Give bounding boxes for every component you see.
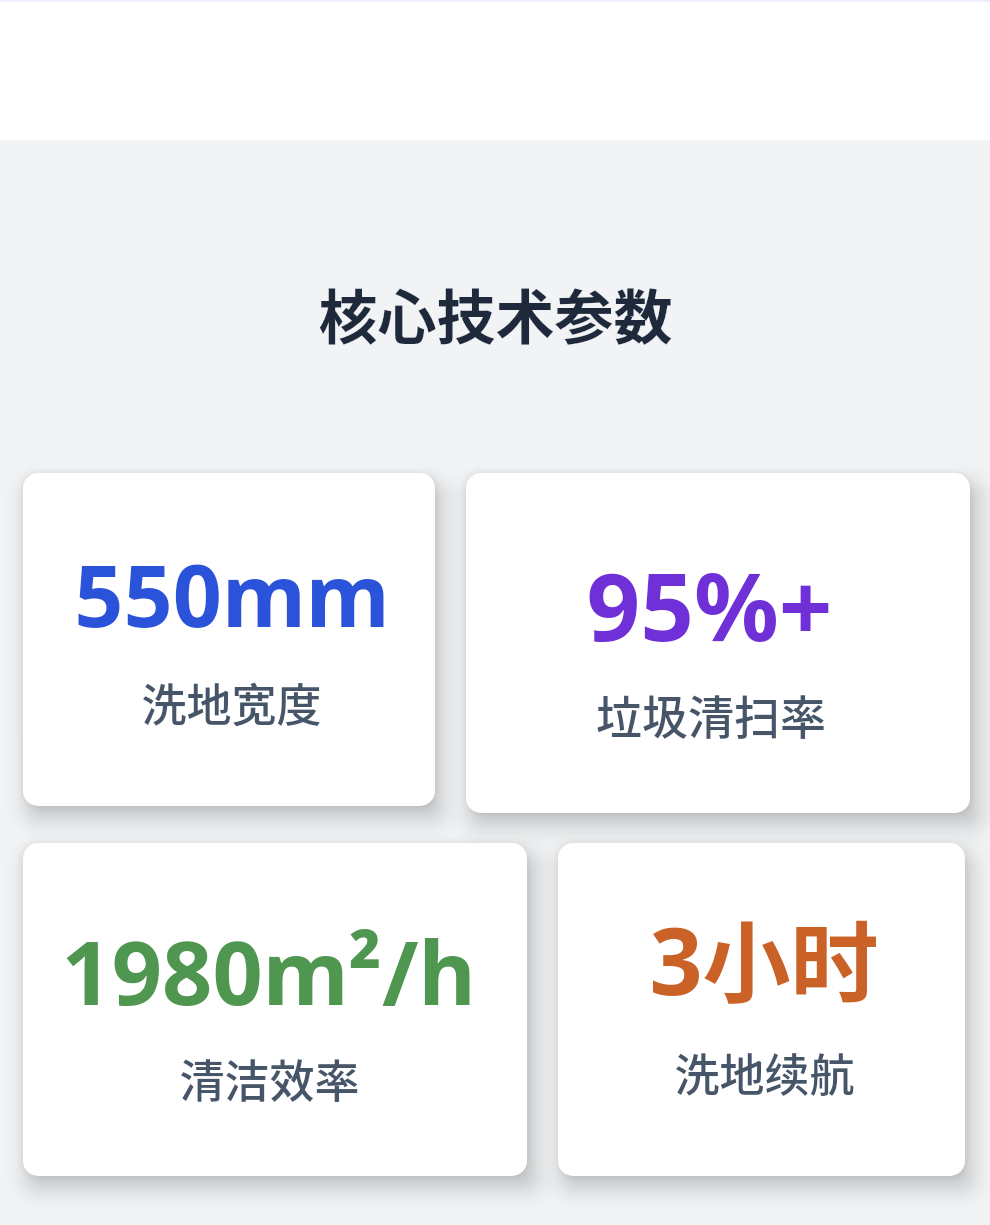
staticText: 垃圾清扫率 <box>596 681 826 748</box>
staticText: 1980m²/h <box>61 911 476 1031</box>
button[interactable]: 清洁效率 1980m²/h <box>23 843 527 1176</box>
staticText: 95%+ <box>586 541 833 669</box>
button[interactable]: 垃圾清扫率 95%+ <box>466 473 970 813</box>
staticText: 3小时 <box>649 893 879 1022</box>
staticText: 洗地续航 <box>674 1040 855 1105</box>
staticText: 550mm <box>74 535 390 652</box>
button[interactable]: 洗地续航 3小时 <box>558 843 965 1176</box>
staticText: 核心技术参数 <box>318 271 673 356</box>
staticText: 清洁效率 <box>179 1046 360 1111</box>
staticText: 洗地宽度 <box>141 670 322 735</box>
button[interactable]: 洗地宽度 550mm <box>23 473 435 806</box>
